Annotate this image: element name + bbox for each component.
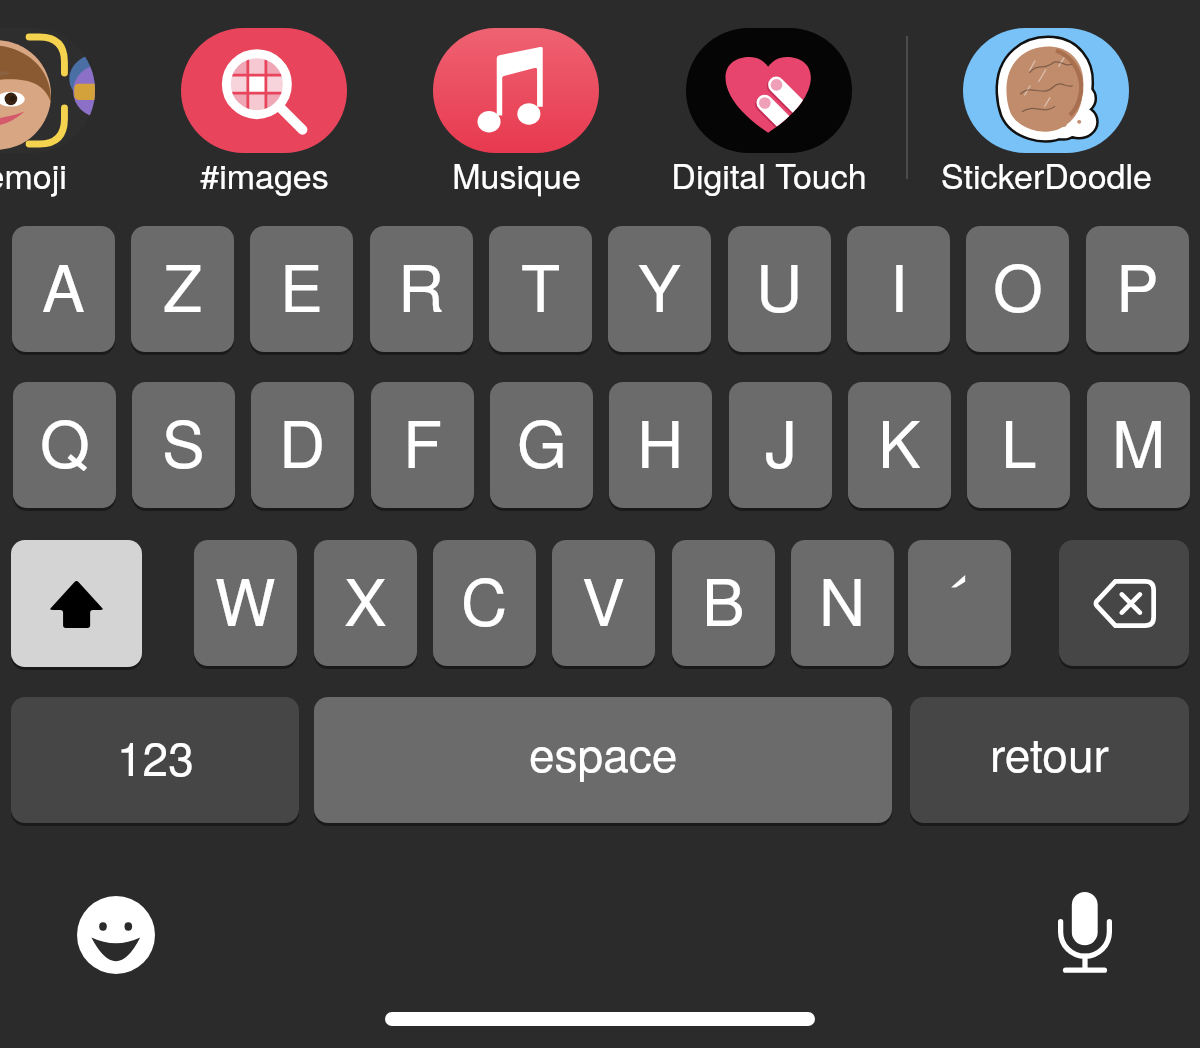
button[interactable]: J: [729, 382, 832, 508]
button[interactable]: G: [490, 382, 593, 508]
staticText: V: [582, 553, 625, 645]
button[interactable]: Emoji keyboard: [60, 879, 172, 991]
staticText: M: [1112, 395, 1166, 487]
staticText: P: [1116, 239, 1159, 331]
staticText: C: [461, 553, 508, 645]
button[interactable]: R: [370, 226, 473, 352]
button[interactable]: E: [250, 226, 353, 352]
button[interactable]: A: [12, 226, 115, 352]
button[interactable]: Z: [131, 226, 234, 352]
staticText: retour: [990, 719, 1109, 785]
button[interactable]: Y: [608, 226, 711, 352]
button[interactable]: 123: [11, 697, 299, 823]
button[interactable]: C: [433, 540, 536, 666]
button[interactable]: Acute accent: [908, 540, 1011, 666]
staticText: Musique: [452, 150, 581, 199]
button[interactable]: S: [132, 382, 235, 508]
staticText: Memoji: [0, 150, 67, 199]
button[interactable]: D: [251, 382, 354, 508]
staticText: 123: [117, 723, 194, 789]
staticText: Z: [163, 239, 203, 331]
staticText: F: [403, 395, 443, 487]
staticText: Q: [40, 395, 90, 487]
staticText: Digital Touch: [671, 150, 867, 199]
button[interactable]: P: [1086, 226, 1189, 352]
button[interactable]: X: [314, 540, 417, 666]
staticText: D: [279, 395, 326, 487]
staticText: U: [756, 239, 803, 331]
button[interactable]: H: [609, 382, 712, 508]
staticText: J: [765, 395, 797, 487]
button[interactable]: #images: [138, 0, 390, 200]
staticText: A: [42, 239, 85, 331]
button[interactable]: Dictation: [1029, 876, 1141, 988]
button[interactable]: U: [728, 226, 831, 352]
staticText: W: [215, 553, 276, 645]
staticText: I: [890, 239, 908, 331]
button[interactable]: B: [672, 540, 775, 666]
button[interactable]: N: [791, 540, 894, 666]
button[interactable]: F: [371, 382, 474, 508]
staticText: StickerDoodle: [941, 150, 1152, 199]
button[interactable]: K: [848, 382, 951, 508]
button[interactable]: V: [552, 540, 655, 666]
staticText: B: [702, 553, 745, 645]
button[interactable]: T: [489, 226, 592, 352]
button[interactable]: M: [1087, 382, 1190, 508]
button[interactable]: O: [966, 226, 1069, 352]
staticText: N: [819, 553, 866, 645]
staticText: T: [521, 239, 561, 331]
staticText: R: [398, 239, 445, 331]
staticText: L: [1001, 395, 1037, 487]
button[interactable]: W: [194, 540, 297, 666]
staticText: G: [517, 395, 567, 487]
button[interactable]: StickerDoodle: [920, 0, 1172, 200]
button[interactable]: L: [967, 382, 1070, 508]
staticText: #images: [200, 150, 329, 199]
staticText: espace: [529, 719, 678, 785]
staticText: S: [162, 395, 205, 487]
button[interactable]: espace: [314, 697, 892, 823]
staticText: H: [637, 395, 684, 487]
button[interactable]: Digital Touch: [643, 0, 895, 200]
button[interactable]: Shift: [11, 540, 142, 667]
button[interactable]: Q: [13, 382, 116, 508]
staticText: X: [344, 553, 387, 645]
staticText: K: [878, 395, 921, 487]
staticText: Y: [638, 239, 681, 331]
button[interactable]: retour: [910, 697, 1189, 823]
staticText: O: [993, 239, 1043, 331]
button[interactable]: Backspace: [1059, 540, 1189, 666]
staticText: E: [280, 239, 323, 331]
button[interactable]: Memoji: [0, 0, 138, 200]
button[interactable]: I: [847, 226, 950, 352]
button[interactable]: Musique: [390, 0, 642, 200]
